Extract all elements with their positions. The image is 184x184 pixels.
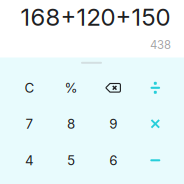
staticText: 438 — [150, 38, 171, 52]
button[interactable]: 6 — [92, 142, 134, 178]
button[interactable]: 8 — [50, 106, 92, 142]
button[interactable]: 4 — [8, 142, 50, 178]
staticText: 7 — [25, 116, 33, 132]
button[interactable]: C — [8, 70, 50, 106]
button[interactable]: Multiply — [134, 106, 176, 142]
staticText: C — [24, 80, 34, 96]
button[interactable]: 5 — [50, 142, 92, 178]
staticText: 4 — [25, 152, 34, 168]
button[interactable]: Delete — [92, 70, 134, 106]
button[interactable]: 7 — [8, 106, 50, 142]
staticText: 9 — [109, 116, 117, 132]
staticText: 8 — [67, 116, 75, 132]
button[interactable]: Subtract — [134, 142, 176, 178]
staticText: % — [64, 80, 77, 96]
staticText: 168+120+150 — [20, 2, 170, 31]
button[interactable]: 9 — [92, 106, 134, 142]
staticText: 5 — [67, 152, 75, 168]
staticText: 6 — [109, 152, 117, 168]
button[interactable]: Divide — [134, 70, 176, 106]
button[interactable]: % — [50, 70, 92, 106]
